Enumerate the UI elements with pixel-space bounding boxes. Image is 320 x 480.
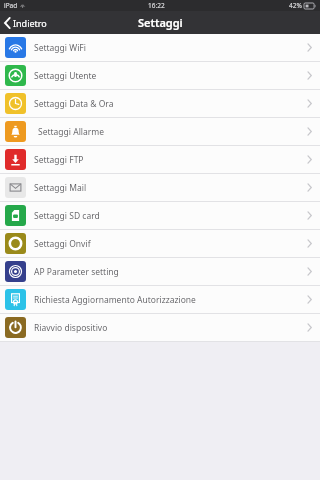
staticText: Richiesta Aggiornamento Autorizzazione (34, 294, 196, 306)
button[interactable]: Settaggi Allarme (0, 118, 320, 145)
button[interactable]: Settaggi Utente (0, 62, 320, 89)
button[interactable]: Indietro (0, 14, 55, 32)
button[interactable]: Settaggi FTP (0, 146, 320, 173)
button[interactable]: Settaggi SD card (0, 202, 320, 229)
button[interactable]: Settaggi Onvif (0, 230, 320, 257)
staticText: Riavvio dispositivo (34, 322, 108, 334)
button[interactable]: Settaggi Data & Ora (0, 90, 320, 117)
button[interactable]: Riavvio dispositivo (0, 314, 320, 341)
staticText: Indietro (13, 17, 47, 29)
staticText: 42% (289, 1, 302, 10)
staticText: Settaggi (138, 15, 183, 30)
staticText: AP Parameter setting (34, 266, 119, 278)
staticText: Settaggi SD card (34, 210, 100, 222)
staticText: Settaggi FTP (34, 154, 84, 166)
staticText: Settaggi WiFi (34, 42, 86, 54)
staticText: Settaggi Data & Ora (34, 98, 114, 110)
staticText: Settaggi Mail (34, 182, 87, 194)
button[interactable]: Richiesta Aggiornamento Autorizzazione (0, 286, 320, 313)
staticText: 16:22 (148, 1, 165, 10)
staticText: Settaggi Onvif (34, 238, 91, 250)
staticText: Settaggi Utente (34, 70, 97, 82)
staticText: iPad (4, 1, 18, 10)
staticText: Settaggi Allarme (38, 126, 105, 138)
button[interactable]: AP Parameter setting (0, 258, 320, 285)
button[interactable]: Settaggi Mail (0, 174, 320, 201)
button[interactable]: Settaggi WiFi (0, 34, 320, 61)
